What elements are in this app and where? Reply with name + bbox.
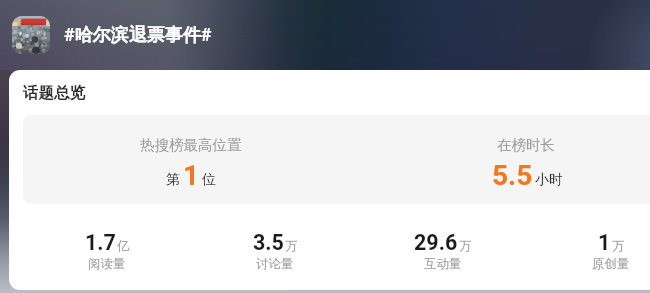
button[interactable]: Topic avatar [12,16,50,54]
staticText: 阅读量 [88,256,126,272]
button[interactable]: 在榜时长 [358,115,650,204]
staticText: 互动量 [424,256,462,272]
button[interactable]: 1 [527,230,650,272]
staticText: 原创量 [592,256,630,272]
staticText: 在榜时长 [497,136,555,154]
staticText: 位 [202,171,216,189]
button[interactable]: 1.7 [23,230,191,272]
staticText: 小时 [535,171,563,189]
button[interactable]: 3.5 [191,230,359,272]
staticText: 亿 [117,238,130,254]
staticText: 5.5 [492,159,533,192]
button[interactable]: 热搜榜最高位置 [23,115,358,204]
staticText: 1 [598,230,611,255]
button[interactable]: 29.6 [359,230,527,272]
staticText: 第 [166,171,180,189]
staticText: 热搜榜最高位置 [140,136,242,154]
staticText: 1.7 [85,230,116,255]
staticText: 讨论量 [256,256,294,272]
staticText: 万 [459,238,472,254]
button[interactable]: 话题总览 [23,83,85,103]
staticText: 1 [183,159,200,192]
staticText: 29.6 [414,230,458,255]
staticText: 3.5 [253,230,284,255]
staticText: 万 [612,238,625,254]
staticText: 万 [285,238,298,254]
button[interactable]: #哈尔滨退票事件# [64,24,212,47]
